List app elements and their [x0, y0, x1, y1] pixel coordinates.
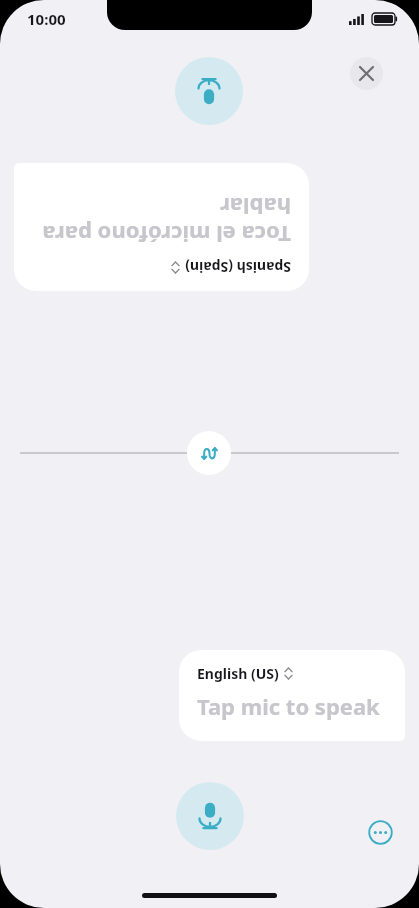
staticText: 10:00: [27, 9, 66, 29]
staticText: Toca el micrófono para hablar: [32, 192, 291, 250]
staticText: Spanish (Spain): [185, 258, 291, 277]
button[interactable]: Spanish (Spain): [14, 163, 309, 291]
button[interactable]: Microphone, Spanish: [175, 57, 243, 125]
staticText: Tap mic to speak: [197, 691, 380, 721]
button[interactable]: Microphone, English: [176, 782, 244, 850]
button[interactable]: Swap languages: [187, 431, 231, 475]
button[interactable]: More options: [365, 817, 395, 847]
staticText: English (US): [197, 664, 279, 683]
button[interactable]: English (US): [179, 650, 405, 741]
button[interactable]: Close: [350, 57, 383, 90]
